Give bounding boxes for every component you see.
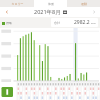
staticText: 体重 [48,2,54,6]
staticText: 2982.2 [74,19,90,26]
button[interactable]: 摂取 [2,21,12,25]
button[interactable]: Previous month [0,7,13,17]
button[interactable]: Add entry [1,86,13,96]
button[interactable]: 体重 [34,0,67,7]
staticText: 合計 [54,21,60,25]
button[interactable]: 2021年8月 [13,7,87,17]
staticText: 運動 [81,2,87,6]
staticText: 2021年8月 [34,8,61,16]
staticText: 摂取 [6,21,12,25]
staticText: カロリー [11,2,24,6]
button[interactable]: 運動 [67,0,100,7]
button[interactable]: Next month [87,7,100,17]
button[interactable]: 合計 [51,18,98,27]
button[interactable]: カロリー [0,0,34,7]
staticText: kcal [91,21,96,24]
